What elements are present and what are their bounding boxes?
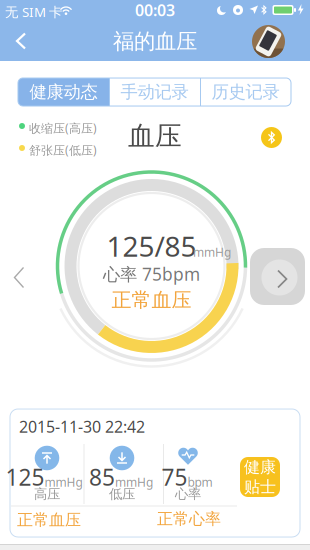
staticText: 健康动态 [29,81,97,103]
staticText: 125 [5,462,44,492]
button[interactable]: 返回 [12,27,36,55]
staticText: 贴士 [244,477,276,497]
staticText: 福的血压 [113,28,197,55]
staticText: 无 SIM 卡 [5,3,62,21]
staticText: mmHg [115,474,153,490]
staticText: 85 [89,462,115,492]
staticText: 收缩压(高压) [29,120,97,136]
button[interactable]: 个人头像 [252,25,285,58]
button[interactable]: 手动记录 [109,78,200,106]
staticText: 正常血压 [17,510,81,530]
staticText: 手动记录 [120,81,188,103]
staticText: mmHg [193,244,231,260]
staticText: bpm [187,474,212,490]
staticText: mmHg [44,474,82,490]
button[interactable]: 下一页 [250,248,305,305]
button[interactable]: 健康动态 [18,78,109,106]
staticText: 2015-11-30 22:42 [19,416,145,437]
staticText: 正常血压 [111,288,191,312]
staticText: 00:03 [135,0,175,21]
staticText: 高压 [34,486,60,502]
staticText: 血压 [128,120,182,152]
staticText: 心率 75bpm [103,262,200,285]
staticText: 历史记录 [211,81,279,103]
staticText: 健康 [244,457,276,477]
staticText: 75 [161,462,187,492]
staticText: 舒张压(低压) [29,142,97,158]
staticText: 正常心率 [157,509,221,529]
button[interactable]: 健康 [240,457,280,497]
staticText: 125/85 [106,227,196,265]
staticText: 低压 [109,486,135,502]
button[interactable]: 蓝牙连接 [261,127,282,148]
button[interactable]: 上一页 [10,262,34,292]
button[interactable]: 历史记录 [200,78,291,106]
staticText: 心率 [175,486,201,502]
